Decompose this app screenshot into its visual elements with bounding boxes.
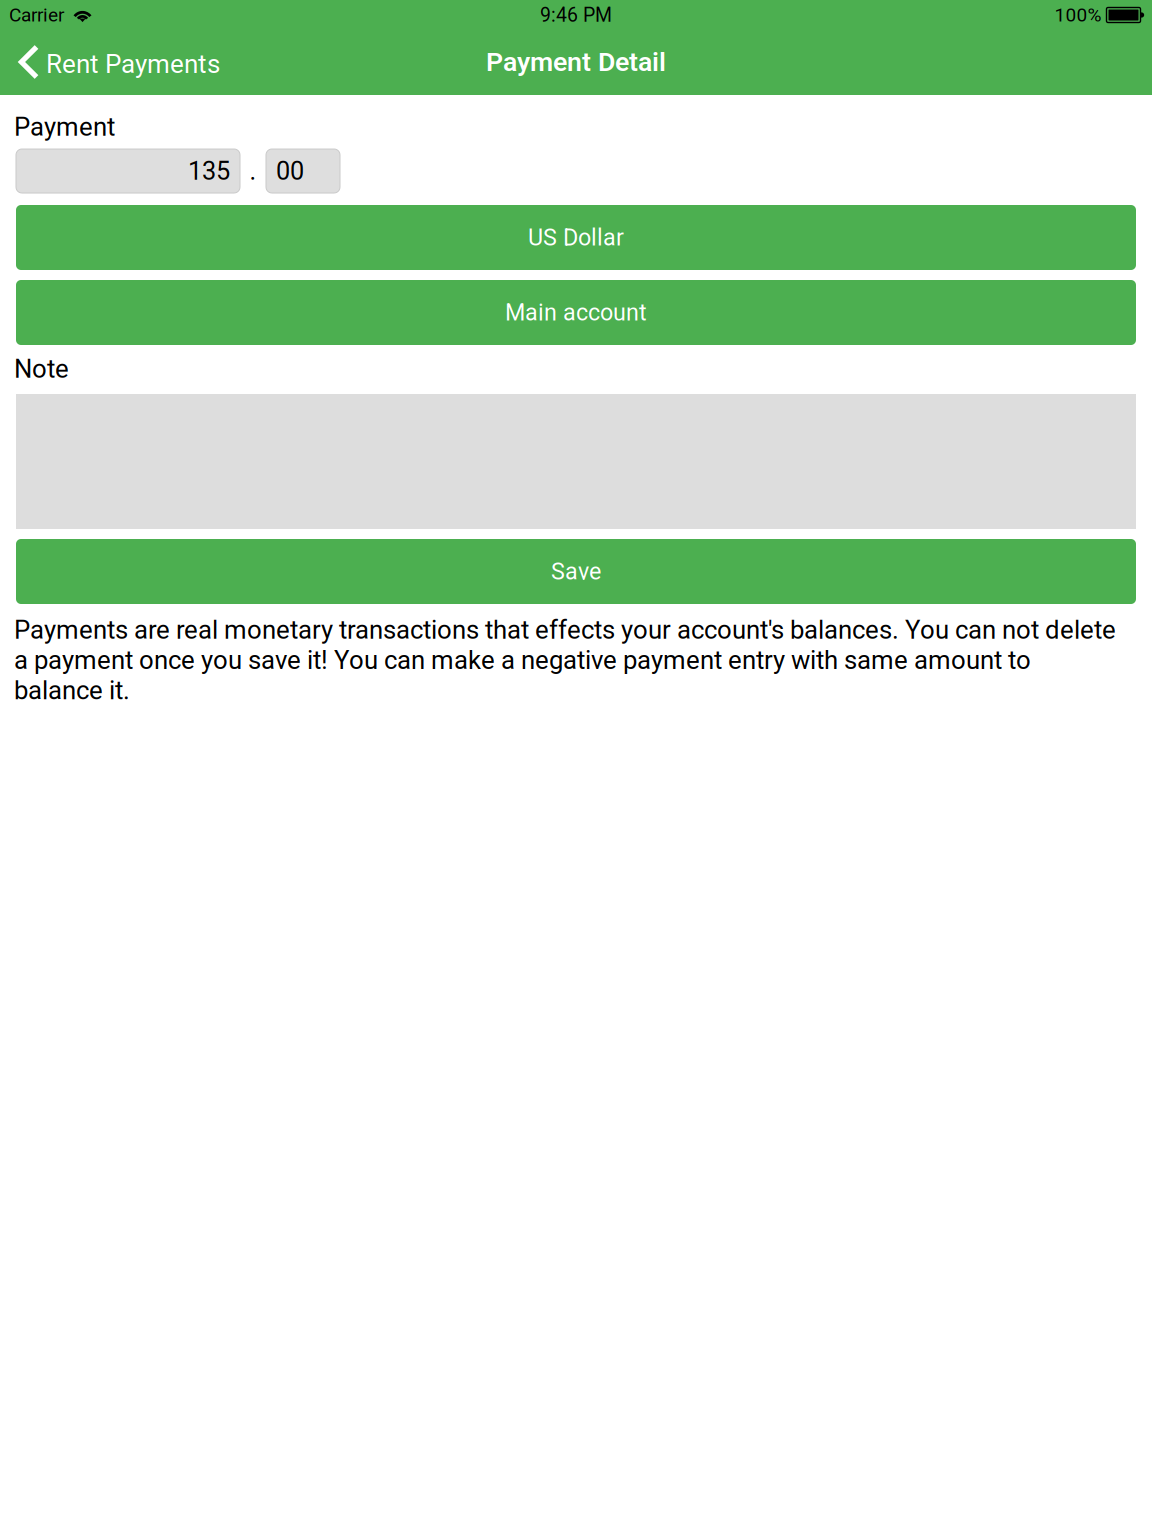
staticText: Payment Detail	[486, 46, 666, 78]
button[interactable]: 135	[16, 149, 240, 193]
staticText: Payments are real monetary transactions …	[14, 615, 1116, 705]
staticText: Rent Payments	[46, 49, 220, 79]
staticText: 135	[188, 156, 230, 186]
staticText: Note	[14, 354, 69, 384]
staticText: 9:46 PM	[540, 4, 612, 26]
staticText: 00	[276, 156, 304, 186]
staticText: US Dollar	[528, 224, 624, 251]
button[interactable]: US Dollar	[16, 205, 1136, 270]
staticText: Main account	[505, 299, 647, 326]
staticText: Save	[551, 558, 601, 585]
staticText: Carrier	[9, 4, 64, 26]
staticText: Payment	[14, 112, 115, 142]
staticText: .	[249, 156, 256, 186]
button[interactable]: Main account	[16, 280, 1136, 345]
staticText: 100%	[1054, 4, 1101, 26]
button[interactable]: Save	[16, 539, 1136, 604]
button[interactable]: Rent Payments	[0, 36, 234, 88]
button[interactable]: 00	[266, 149, 340, 193]
